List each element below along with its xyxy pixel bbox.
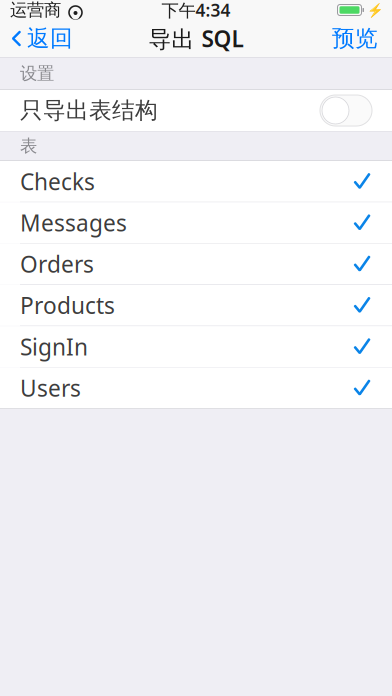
staticText: 运营商 (10, 0, 61, 21)
staticText: 返回 (27, 25, 73, 52)
staticText: 设置 (20, 63, 54, 84)
button[interactable]: Products (0, 285, 392, 326)
staticText: 导出 SQL (148, 23, 243, 53)
button[interactable]: 预览 (320, 20, 390, 57)
staticText: Messages (20, 208, 127, 238)
staticText: Products (20, 290, 115, 320)
button[interactable]: 返回 (2, 20, 82, 57)
button[interactable]: Orders (0, 244, 392, 285)
staticText: Checks (20, 166, 95, 196)
staticText: Orders (20, 249, 94, 279)
button[interactable]: Users (0, 367, 392, 408)
staticText: 只导出表结构 (20, 97, 158, 124)
staticText: 表 (20, 135, 37, 157)
staticText: 下午4:34 (161, 0, 230, 21)
button[interactable]: SignIn (0, 326, 392, 367)
staticText: ⚡ (367, 2, 384, 18)
button[interactable]: Messages (0, 202, 392, 244)
staticText: SignIn (20, 331, 88, 362)
staticText: 预览 (332, 25, 378, 52)
button[interactable]: Checks (0, 161, 392, 202)
staticText: Users (20, 373, 81, 403)
button[interactable]: 只导出表结构 (0, 90, 392, 131)
